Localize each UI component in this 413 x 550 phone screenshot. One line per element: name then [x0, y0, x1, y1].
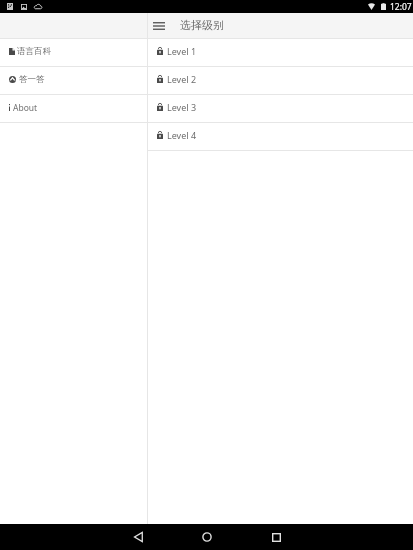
- button[interactable]: Recent apps: [250, 524, 302, 550]
- button[interactable]: About: [0, 95, 147, 122]
- staticText: About: [13, 102, 38, 114]
- button[interactable]: 答一答: [0, 67, 147, 94]
- staticText: 语言百科: [17, 46, 51, 57]
- button[interactable]: 语言百科: [0, 39, 147, 66]
- button[interactable]: Level 2: [148, 67, 413, 94]
- staticText: 选择级别: [180, 18, 224, 32]
- staticText: Level 4: [167, 129, 197, 141]
- staticText: 12:07: [390, 1, 412, 13]
- button[interactable]: Open navigation menu: [148, 13, 170, 38]
- button[interactable]: Level 3: [148, 95, 413, 122]
- staticText: Level 2: [167, 73, 197, 85]
- staticText: Level 3: [167, 101, 197, 113]
- staticText: 答一答: [19, 74, 45, 85]
- staticText: Level 1: [167, 45, 197, 57]
- button[interactable]: Level 1: [148, 39, 413, 66]
- button[interactable]: Home: [181, 524, 233, 550]
- button[interactable]: Back: [112, 524, 164, 550]
- button[interactable]: Level 4: [148, 123, 413, 150]
